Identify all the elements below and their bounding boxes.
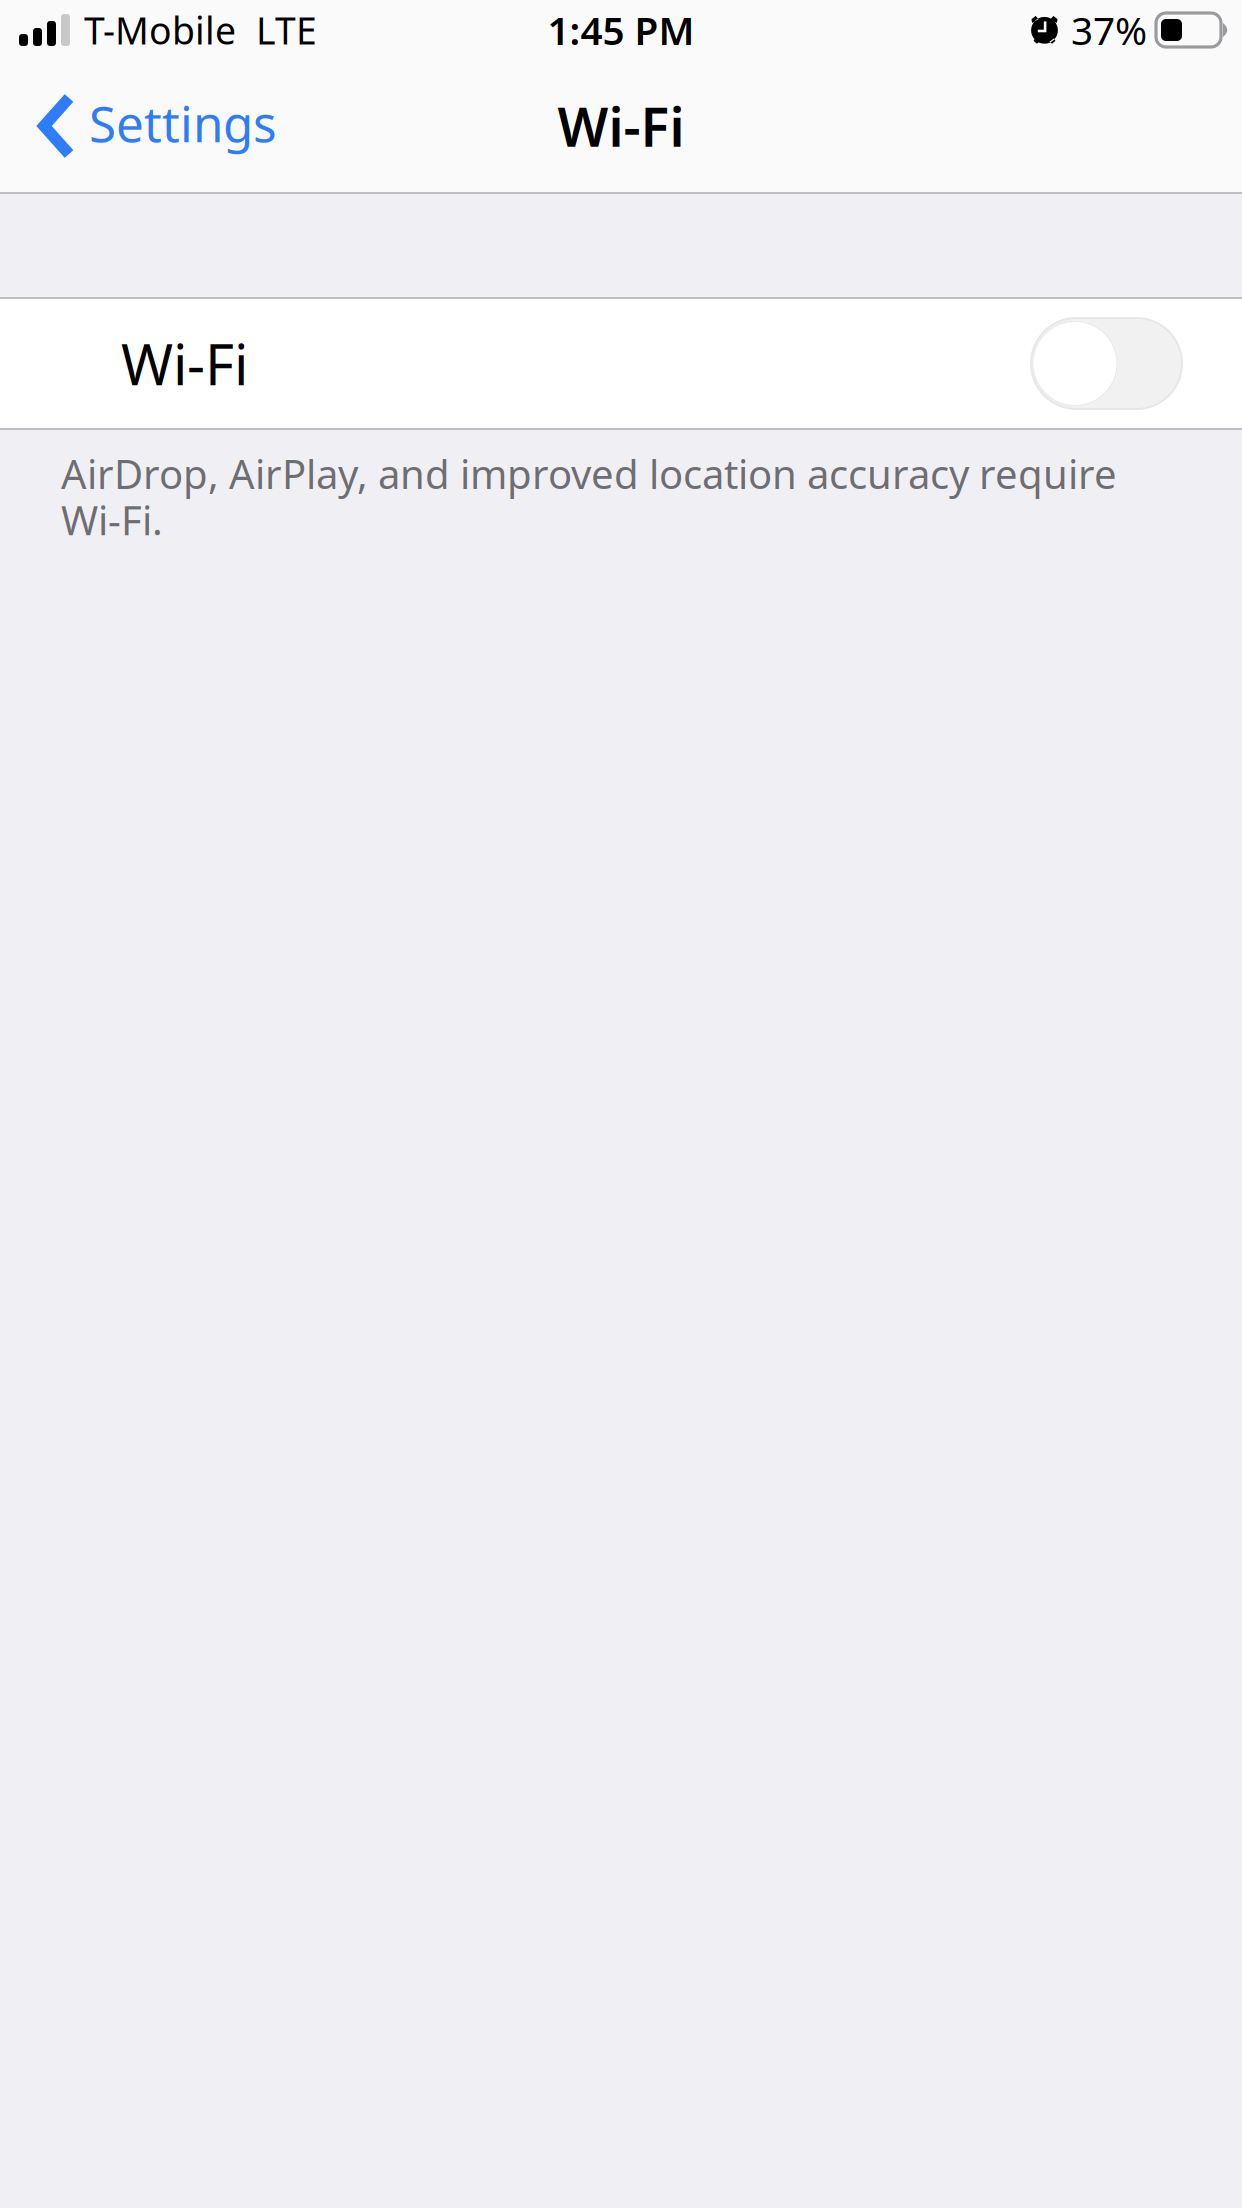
staticText: Settings bbox=[89, 90, 277, 156]
staticText: LTE bbox=[256, 5, 317, 55]
staticText: 1:45 PM bbox=[547, 4, 694, 56]
staticText: Wi-Fi bbox=[121, 326, 248, 401]
staticText: AirDrop, AirPlay, and improved location … bbox=[61, 447, 1117, 546]
staticText: T-Mobile bbox=[84, 5, 236, 55]
button[interactable]: Settings bbox=[0, 74, 295, 178]
button[interactable]: Wi-Fi, off bbox=[1031, 318, 1182, 409]
staticText: Wi-Fi bbox=[557, 91, 684, 161]
staticText: 37% bbox=[1071, 4, 1147, 56]
